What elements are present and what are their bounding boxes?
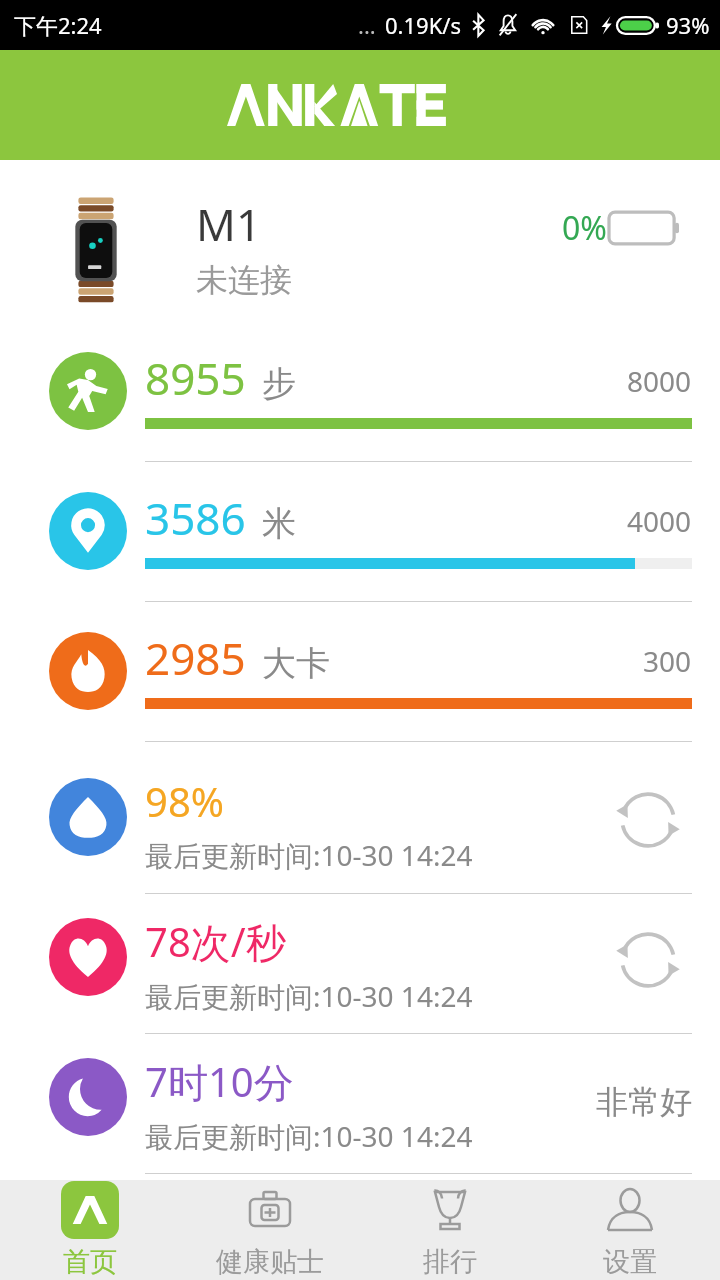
button[interactable]: 8955: [0, 340, 720, 480]
staticText: 8000: [627, 362, 692, 400]
button[interactable]: 78次/秒: [0, 900, 720, 1040]
button[interactable]: 排行: [360, 1180, 540, 1280]
staticText: ...: [358, 10, 376, 40]
button[interactable]: 设置: [540, 1180, 720, 1280]
staticText: 7时10分: [145, 1054, 294, 1109]
button[interactable]: 98%: [0, 760, 720, 900]
button[interactable]: 2985: [0, 620, 720, 760]
staticText: 93%: [666, 10, 710, 40]
staticText: 健康贴士: [216, 1245, 324, 1279]
staticText: 米: [262, 502, 296, 545]
staticText: 300: [643, 642, 692, 680]
button[interactable]: 首页: [0, 1180, 180, 1280]
staticText: 0%: [562, 206, 607, 250]
staticText: 排行: [423, 1245, 477, 1279]
staticText: 未连接: [196, 260, 292, 300]
button[interactable]: 7时10分: [0, 1040, 720, 1180]
staticText: 步: [262, 362, 296, 405]
staticText: 2985: [145, 628, 246, 688]
staticText: 78次/秒: [145, 914, 286, 969]
staticText: 98%: [145, 774, 224, 828]
staticText: 下午2:24: [14, 10, 102, 40]
button[interactable]: M1: [0, 160, 720, 340]
button[interactable]: 刷新: [612, 924, 684, 996]
staticText: M1: [196, 194, 262, 254]
button[interactable]: 刷新: [612, 784, 684, 856]
button[interactable]: 3586: [0, 480, 720, 620]
staticText: 4000: [627, 502, 692, 540]
staticText: 8955: [145, 348, 246, 408]
staticText: 最后更新时间:10-30 14:24: [145, 977, 473, 1015]
button[interactable]: 健康贴士: [180, 1180, 360, 1280]
staticText: 首页: [63, 1245, 117, 1279]
staticText: 3586: [145, 488, 246, 548]
staticText: 最后更新时间:10-30 14:24: [145, 1117, 473, 1155]
staticText: 设置: [603, 1245, 657, 1279]
staticText: 0.19K/s: [385, 10, 461, 40]
staticText: 最后更新时间:10-30 14:24: [145, 836, 473, 874]
staticText: 非常好: [596, 1082, 692, 1122]
staticText: 大卡: [262, 642, 330, 685]
